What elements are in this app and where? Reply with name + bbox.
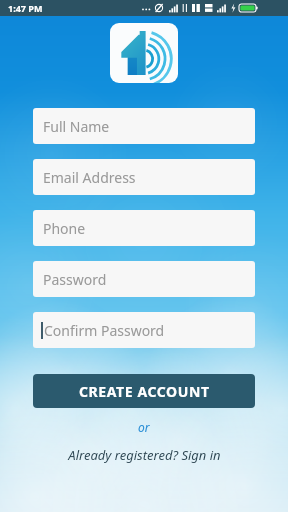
button[interactable]: Already registered? Sign in (60, 444, 229, 466)
button[interactable]: Full Name (33, 108, 255, 144)
staticText: or (138, 419, 150, 435)
staticText: Confirm Password (44, 321, 165, 340)
staticText: Already registered? Sign in (68, 446, 221, 464)
staticText: Password (43, 270, 107, 289)
button[interactable]: CREATE ACCOUNT (33, 374, 255, 408)
staticText: CREATE ACCOUNT (79, 382, 210, 401)
other: App logo (110, 23, 178, 83)
staticText: Full Name (43, 117, 110, 136)
button[interactable]: Email Address (33, 159, 255, 195)
button[interactable]: Phone (33, 210, 255, 246)
staticText: Phone (43, 219, 86, 238)
button[interactable]: Password (33, 261, 255, 297)
staticText: Email Address (43, 168, 136, 187)
staticText: 1:47 PM (8, 2, 43, 14)
button[interactable]: Confirm Password (33, 312, 255, 348)
